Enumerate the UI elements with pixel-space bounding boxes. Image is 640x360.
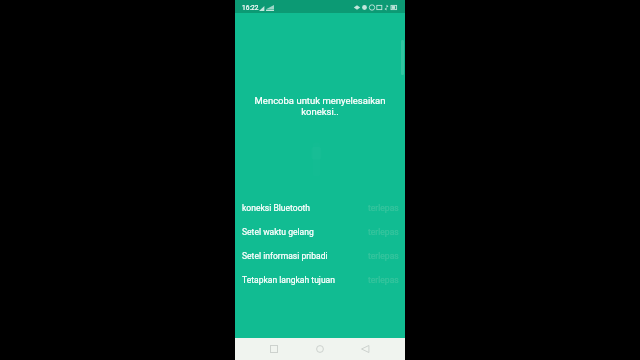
staticText: terlepas <box>368 251 399 261</box>
staticText: Setel informasi pribadi <box>242 251 328 261</box>
staticText: terlepas <box>368 227 399 237</box>
staticText: terlepas <box>368 275 399 285</box>
staticText: koneksi Bluetooth <box>242 203 311 213</box>
button[interactable]: Recent apps <box>258 338 289 360</box>
button[interactable]: koneksi Bluetooth <box>235 196 405 220</box>
staticText: Mencoba untuk menyelesaikan koneksi.. <box>240 95 400 117</box>
button[interactable]: Setel waktu gelang <box>235 220 405 244</box>
button[interactable]: Back <box>350 338 381 360</box>
staticText: Tetapkan langkah tujuan <box>242 275 335 285</box>
button[interactable]: Setel informasi pribadi <box>235 244 405 268</box>
button[interactable]: Home <box>304 338 335 360</box>
staticText: terlepas <box>368 203 399 213</box>
staticText: Setel waktu gelang <box>242 227 314 237</box>
staticText: 16:22 <box>242 4 259 12</box>
button[interactable]: Tetapkan langkah tujuan <box>235 268 405 292</box>
